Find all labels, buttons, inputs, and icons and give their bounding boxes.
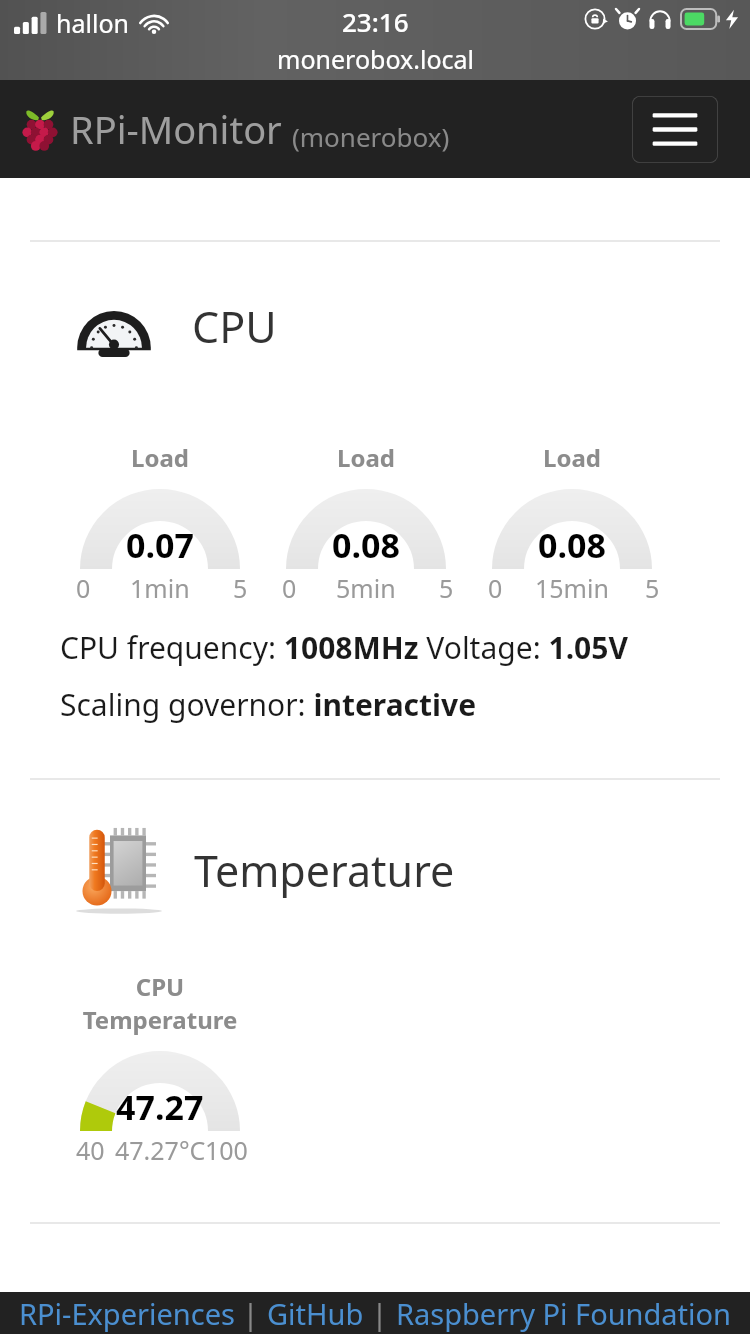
staticText: 40 bbox=[76, 1133, 105, 1167]
staticText: 47.27°C bbox=[115, 1133, 206, 1167]
staticText: 0.08 bbox=[538, 522, 606, 568]
staticText: hallon bbox=[56, 6, 129, 40]
button[interactable]: GitHub bbox=[267, 1294, 364, 1333]
staticText: RPi-Monitor bbox=[70, 103, 282, 155]
button[interactable]: RPi-Experiences bbox=[19, 1294, 235, 1333]
staticText: RPi-Experiences bbox=[19, 1294, 235, 1333]
staticText: 0 bbox=[488, 571, 503, 605]
staticText: CPU Temperature bbox=[57, 970, 263, 1036]
staticText: 5 bbox=[439, 571, 454, 605]
staticText: 1min bbox=[130, 571, 190, 605]
staticText: Load bbox=[337, 441, 395, 474]
button[interactable]: Raspberry Pi Foundation bbox=[396, 1294, 732, 1333]
staticText: CPU frequency: 1008MHz Voltage: 1.05V bbox=[60, 627, 628, 668]
staticText: | bbox=[235, 1294, 267, 1333]
staticText: GitHub bbox=[267, 1294, 364, 1333]
staticText: monerobox.local bbox=[277, 42, 474, 76]
staticText: 0.08 bbox=[332, 522, 400, 568]
staticText: Temperature bbox=[194, 841, 455, 900]
staticText: 47.27 bbox=[116, 1084, 204, 1130]
staticText: Scaling governor: interactive bbox=[60, 684, 477, 725]
staticText: (monerobox) bbox=[292, 119, 450, 154]
staticText: Raspberry Pi Foundation bbox=[396, 1294, 732, 1333]
staticText: CPU bbox=[192, 297, 277, 356]
staticText: 15min bbox=[535, 571, 609, 605]
staticText: 100 bbox=[205, 1133, 248, 1167]
staticText: Load bbox=[131, 441, 189, 474]
staticText: 5min bbox=[336, 571, 396, 605]
staticText: 5 bbox=[645, 571, 660, 605]
button[interactable]: Menu bbox=[632, 96, 718, 163]
staticText: 0 bbox=[76, 571, 91, 605]
staticText: 23:16 bbox=[342, 4, 409, 39]
staticText: 5 bbox=[233, 571, 248, 605]
staticText: Load bbox=[543, 441, 601, 474]
staticText: 0.07 bbox=[126, 522, 194, 568]
staticText: 0 bbox=[282, 571, 297, 605]
staticText: | bbox=[364, 1294, 396, 1333]
